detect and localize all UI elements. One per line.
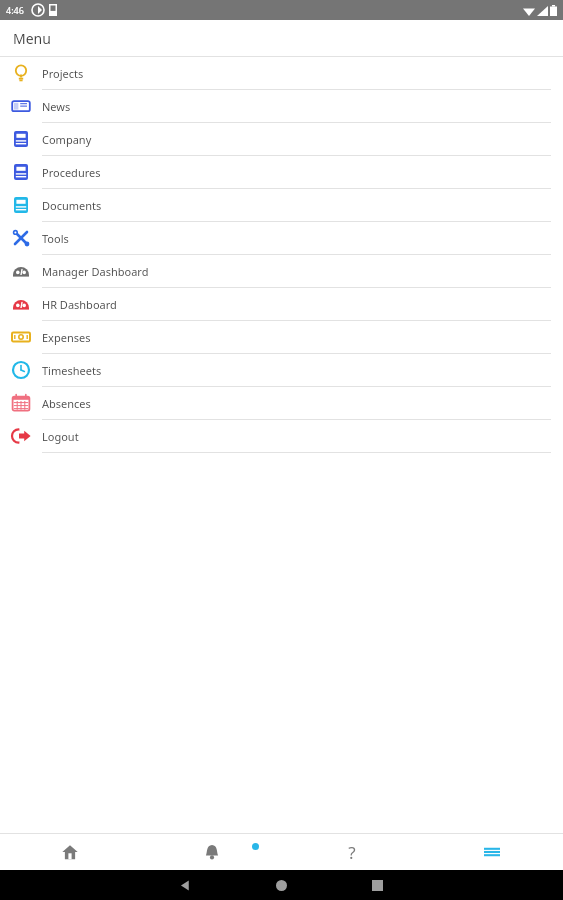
button[interactable]: Logout: [0, 420, 563, 453]
button[interactable]: Company: [0, 123, 563, 156]
button[interactable]: Home: [46, 834, 94, 870]
button[interactable]: Projects: [0, 57, 563, 90]
button[interactable]: Menu: [468, 834, 516, 870]
staticText: Documents: [42, 198, 102, 213]
staticText: Timesheets: [42, 363, 102, 378]
staticText: Expenses: [42, 330, 91, 345]
staticText: HR Dashboard: [42, 297, 117, 312]
staticText: Company: [42, 132, 92, 147]
button[interactable]: Help: [328, 834, 376, 870]
button[interactable]: Tools: [0, 222, 563, 255]
staticText: ?: [348, 841, 356, 864]
button[interactable]: Notifications: [188, 834, 236, 870]
staticText: Tools: [42, 231, 69, 246]
other: Home: [276, 880, 287, 891]
button[interactable]: HR Dashboard: [0, 288, 563, 321]
button[interactable]: News: [0, 90, 563, 123]
staticText: Logout: [42, 429, 79, 444]
button[interactable]: Manager Dashboard: [0, 255, 563, 288]
staticText: Menu: [13, 29, 51, 48]
other: Back: [179, 879, 192, 892]
button[interactable]: Expenses: [0, 321, 563, 354]
staticText: Manager Dashboard: [42, 264, 149, 279]
staticText: Projects: [42, 66, 84, 81]
staticText: 4:46: [6, 4, 24, 16]
button[interactable]: Absences: [0, 387, 563, 420]
button[interactable]: Procedures: [0, 156, 563, 189]
staticText: Procedures: [42, 165, 101, 180]
staticText: News: [42, 99, 71, 114]
button[interactable]: Timesheets: [0, 354, 563, 387]
button[interactable]: Documents: [0, 189, 563, 222]
staticText: Absences: [42, 396, 91, 411]
